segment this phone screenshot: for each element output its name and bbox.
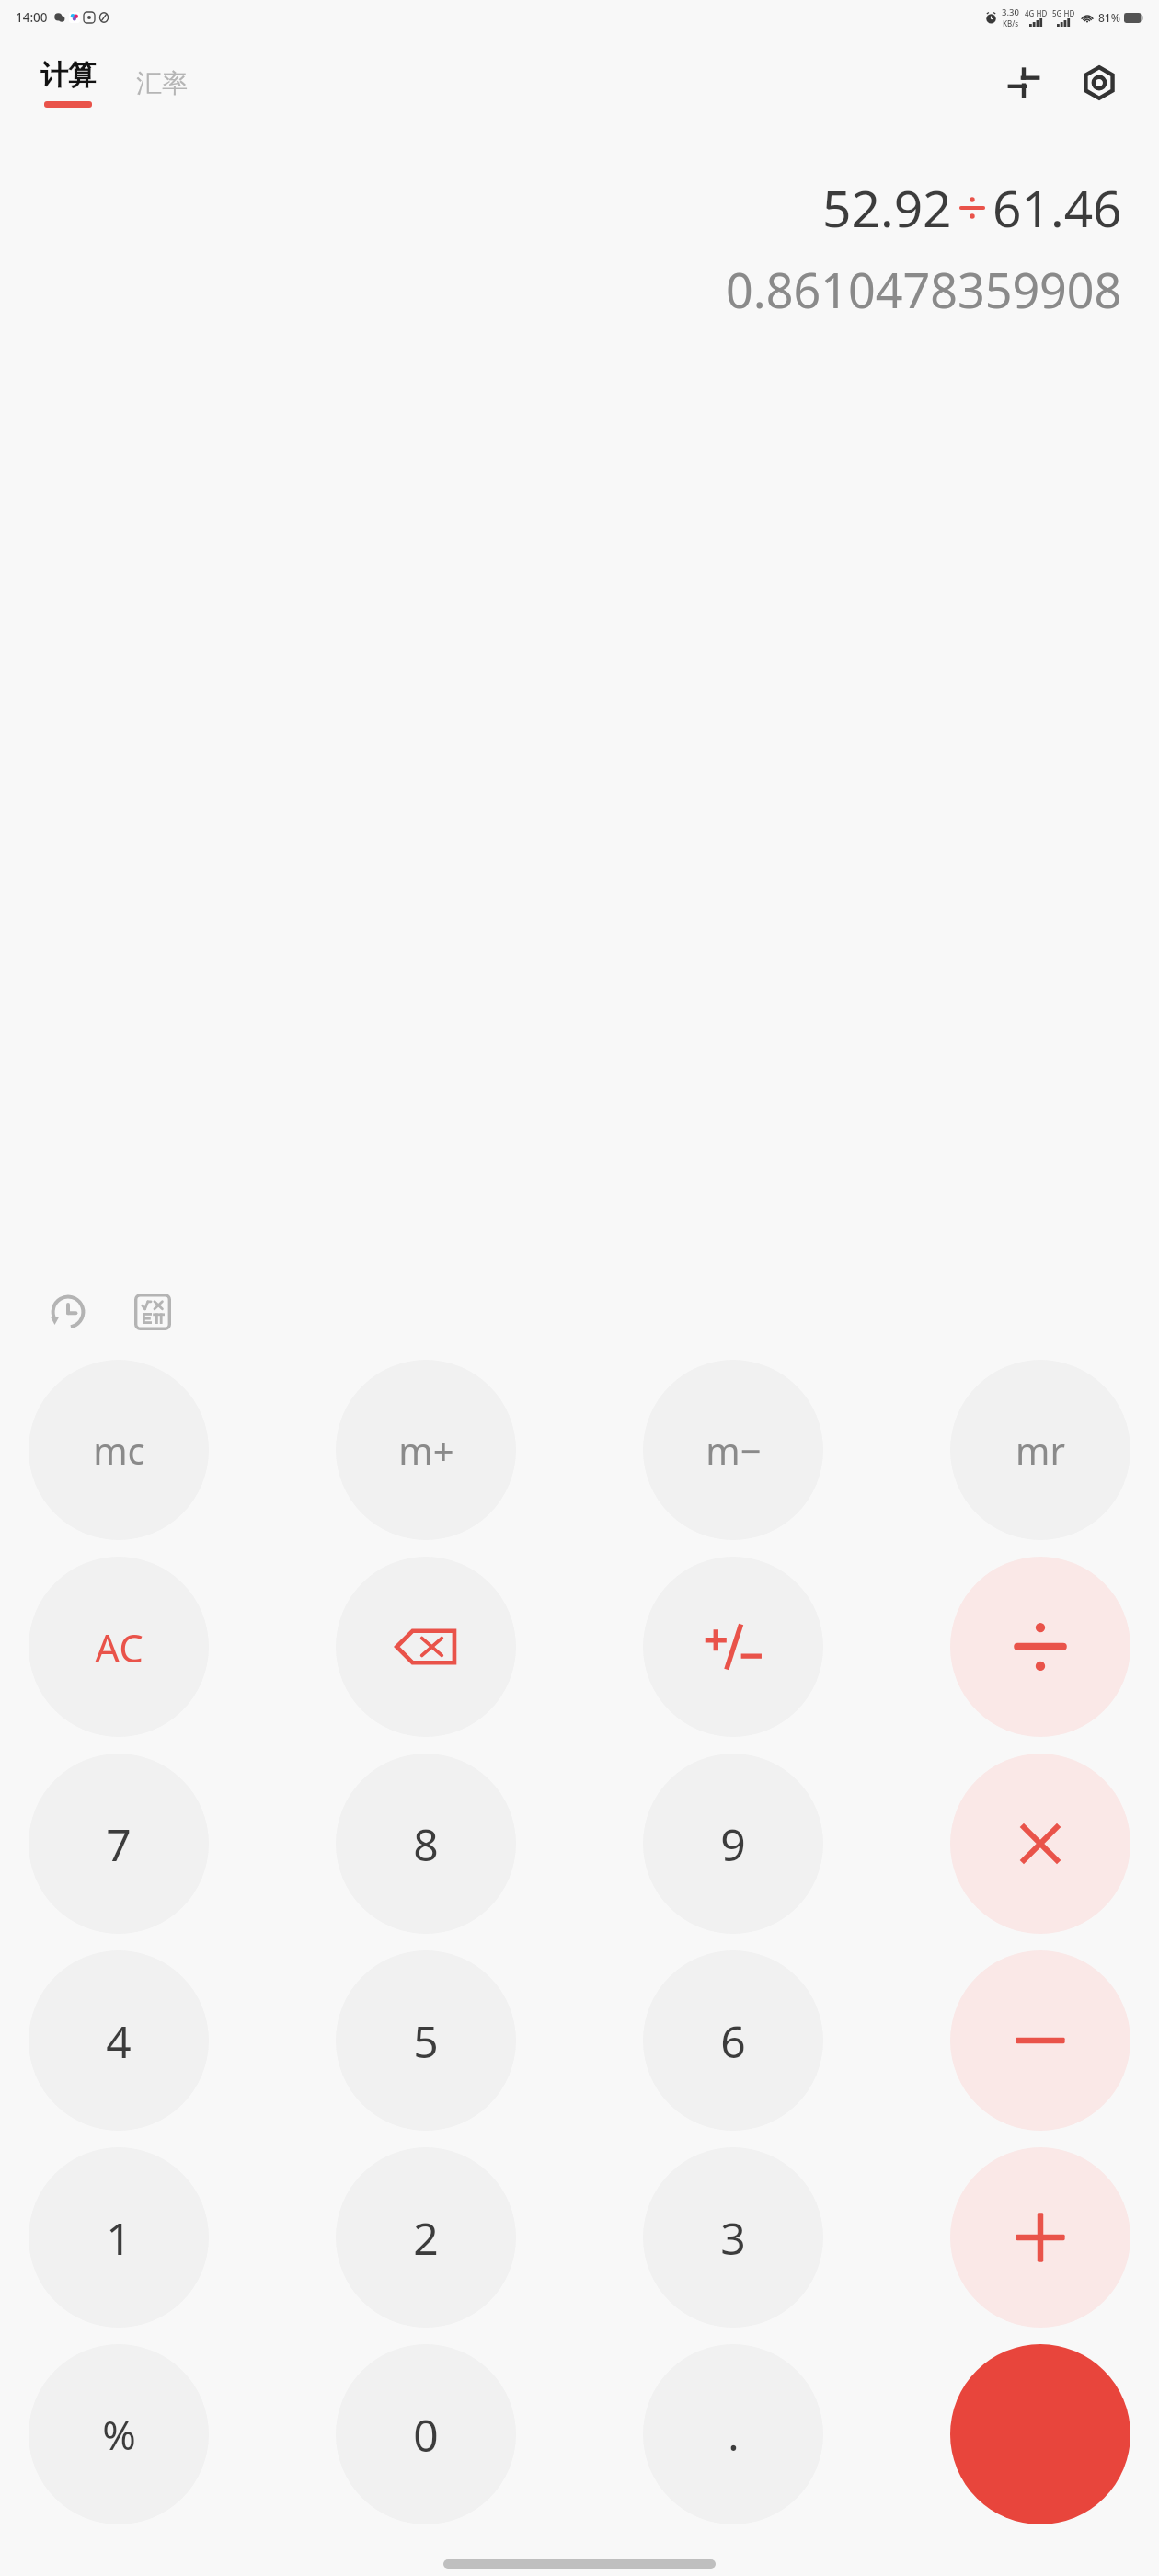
button[interactable]: 5 — [336, 1950, 516, 2131]
staticText: AC — [95, 1621, 143, 1673]
staticText: 3 — [720, 2208, 746, 2268]
staticText: 2 — [413, 2208, 439, 2268]
button[interactable]: m− — [643, 1360, 823, 1540]
button[interactable]: Divide — [950, 1557, 1130, 1737]
button[interactable]: 4 — [29, 1950, 209, 2131]
staticText: 6 — [720, 2011, 746, 2071]
staticText: 81% — [1098, 10, 1120, 25]
button[interactable]: Backspace — [336, 1557, 516, 1737]
staticText: 5 — [413, 2011, 439, 2071]
staticText: 52.92 — [822, 173, 952, 242]
button[interactable]: 2 — [336, 2147, 516, 2328]
staticText: KB/s — [1003, 18, 1019, 29]
staticText: . — [728, 2406, 740, 2464]
button[interactable]: 汇率 — [132, 62, 191, 105]
button[interactable]: Settings — [1071, 54, 1128, 111]
button[interactable]: mc — [29, 1360, 209, 1540]
staticText: 3.30 — [1002, 6, 1019, 18]
staticText: 7 — [106, 1814, 132, 1874]
button[interactable]: % — [29, 2344, 209, 2524]
staticText: 计算 — [40, 58, 96, 93]
staticText: 14:00 — [16, 9, 48, 26]
staticText: 61.46 — [993, 173, 1122, 242]
button[interactable]: Unit converter — [995, 54, 1052, 111]
button[interactable]: Plus minus — [643, 1557, 823, 1737]
staticText: 9 — [720, 1814, 746, 1874]
staticText: % — [102, 2407, 136, 2462]
button[interactable]: mr — [950, 1360, 1130, 1540]
button[interactable]: . — [643, 2344, 823, 2524]
button[interactable]: AC — [29, 1557, 209, 1737]
button[interactable]: Plus — [950, 2147, 1130, 2328]
button[interactable]: 0 — [336, 2344, 516, 2524]
staticText: mc — [93, 1425, 145, 1475]
staticText: m+ — [398, 1425, 454, 1475]
button[interactable]: 8 — [336, 1754, 516, 1934]
button[interactable]: 1 — [29, 2147, 209, 2328]
staticText: 汇率 — [136, 67, 188, 99]
button[interactable]: Scientific mode — [118, 1277, 188, 1347]
button[interactable]: 7 — [29, 1754, 209, 1934]
staticText: 0 — [413, 2405, 439, 2465]
button[interactable]: 9 — [643, 1754, 823, 1934]
button[interactable]: 6 — [643, 1950, 823, 2131]
button[interactable]: Equals — [950, 2344, 1130, 2524]
button[interactable]: History — [33, 1277, 103, 1347]
staticText: 8 — [413, 1814, 439, 1874]
staticText: 0.8610478359908 — [726, 257, 1122, 322]
button[interactable]: Minus — [950, 1950, 1130, 2131]
staticText: 1 — [106, 2208, 132, 2268]
staticText: mr — [1016, 1425, 1065, 1475]
button[interactable]: 计算 — [37, 58, 99, 108]
button[interactable]: m+ — [336, 1360, 516, 1540]
staticText: m− — [706, 1425, 762, 1475]
staticText: 5G HD — [1052, 8, 1075, 18]
button[interactable]: Multiply — [950, 1754, 1130, 1934]
staticText: 4G HD — [1025, 8, 1048, 18]
staticText: 4 — [106, 2011, 132, 2071]
button[interactable]: 3 — [643, 2147, 823, 2328]
